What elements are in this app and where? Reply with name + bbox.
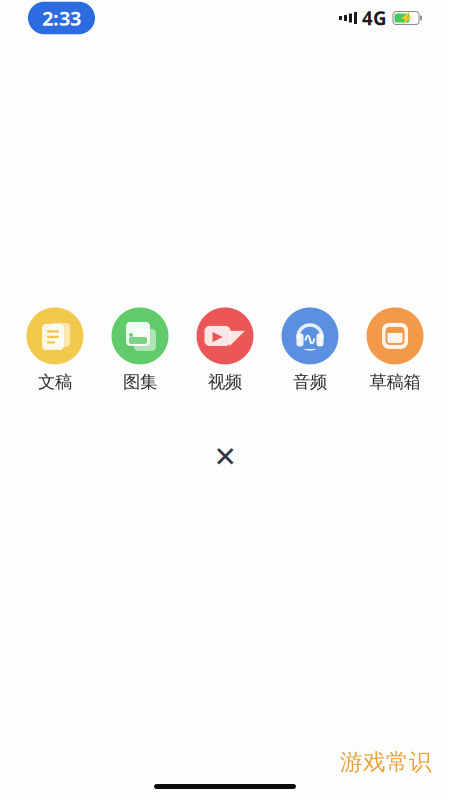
button[interactable]: Close bbox=[198, 437, 252, 477]
staticText: 视频 bbox=[208, 371, 242, 393]
button[interactable]: 文稿 bbox=[15, 307, 95, 393]
staticText: ⚡ bbox=[398, 11, 413, 25]
staticText: ◤ bbox=[229, 326, 244, 348]
staticText: ∿ bbox=[302, 329, 317, 349]
staticText: 游戏常识 bbox=[340, 748, 432, 776]
staticText: ▶ bbox=[212, 328, 222, 343]
staticText: 文稿 bbox=[38, 371, 72, 393]
staticText: ✕ bbox=[213, 441, 236, 473]
button[interactable]: 草稿箱 bbox=[355, 307, 435, 393]
button[interactable]: 图集 bbox=[100, 307, 180, 393]
staticText: 草稿箱 bbox=[369, 371, 420, 393]
staticText: 4G bbox=[362, 6, 387, 30]
staticText: 图集 bbox=[123, 371, 157, 393]
staticText: 2:33 bbox=[42, 5, 81, 31]
button[interactable]: ∿ bbox=[270, 307, 350, 393]
staticText: 音频 bbox=[293, 371, 327, 393]
button[interactable]: ▶ bbox=[185, 307, 265, 393]
